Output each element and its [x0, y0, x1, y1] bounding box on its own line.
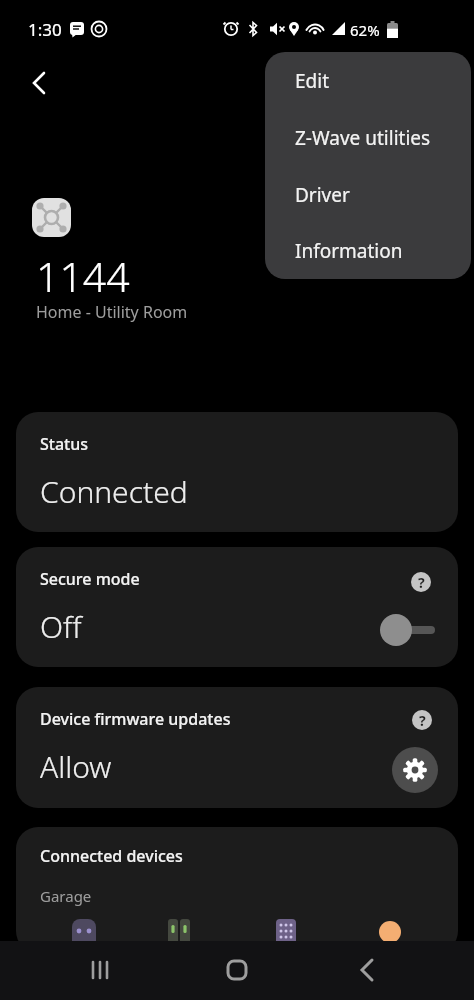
button[interactable]: Edit [265, 52, 471, 109]
button[interactable] [217, 950, 257, 990]
button[interactable] [392, 747, 438, 793]
staticText: 1144 [36, 248, 130, 304]
staticText: Connected devices [40, 845, 183, 867]
button[interactable]: Secure mode [16, 547, 458, 667]
button[interactable]: Information [265, 223, 471, 279]
staticText: Allow [40, 746, 112, 787]
staticText: Off [40, 606, 82, 647]
staticText: Driver [295, 182, 350, 208]
staticText: Z-Wave utilities [295, 125, 431, 151]
staticText: Garage [40, 886, 92, 906]
staticText: ? [418, 573, 425, 592]
button[interactable] [19, 63, 59, 103]
button[interactable]: Device firmware updates [16, 687, 458, 808]
staticText: Device firmware updates [40, 708, 231, 730]
staticText: Secure mode [40, 568, 140, 590]
button[interactable]: Connected devices [16, 827, 458, 953]
button[interactable]: Driver [265, 166, 471, 223]
staticText: 1:30 [28, 18, 62, 41]
staticText: Status [40, 433, 89, 455]
button[interactable]: Status [16, 412, 458, 532]
button[interactable] [80, 950, 120, 990]
staticText: 62% [350, 20, 380, 40]
staticText: ? [419, 711, 426, 730]
staticText: Home - Utility Room [36, 301, 188, 323]
staticText: Information [295, 238, 403, 264]
button[interactable] [380, 614, 436, 646]
staticText: Connected [40, 471, 188, 512]
button[interactable]: ? [412, 710, 432, 730]
button[interactable] [348, 950, 388, 990]
staticText: Edit [295, 68, 330, 94]
button[interactable]: ? [411, 572, 431, 592]
button[interactable]: Z-Wave utilities [265, 109, 471, 166]
